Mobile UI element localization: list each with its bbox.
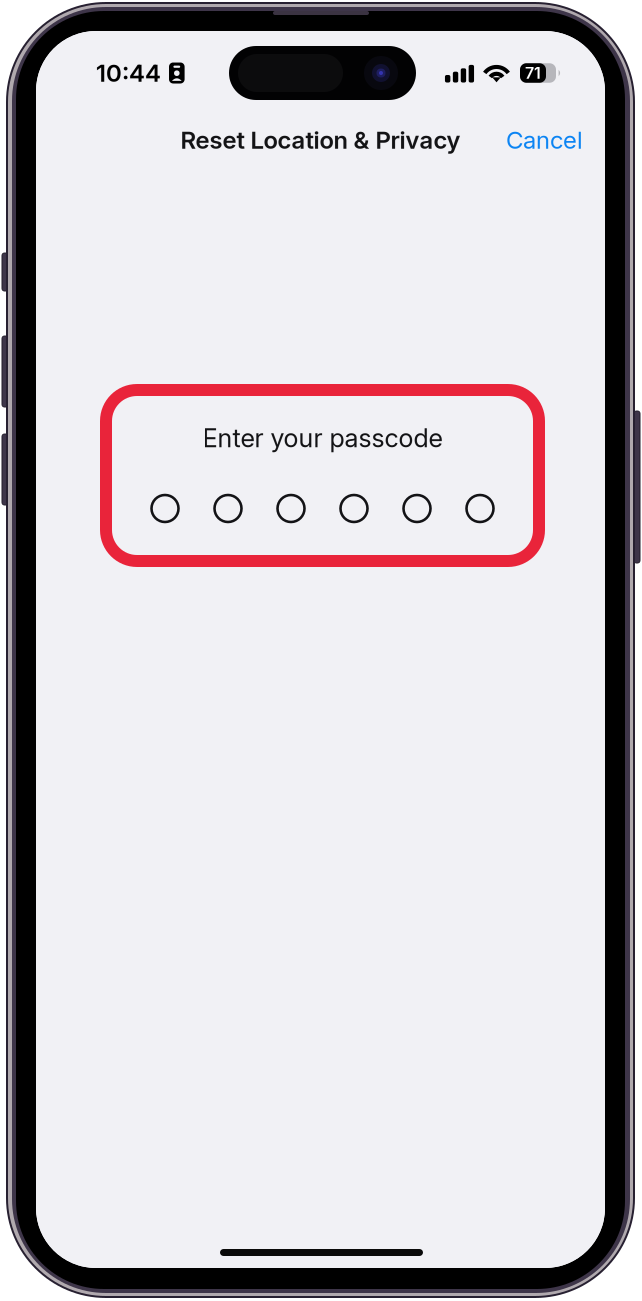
staticText: Enter your passcode <box>202 423 442 453</box>
button[interactable]: Cancel <box>490 125 605 155</box>
staticText: Cancel <box>506 125 583 154</box>
staticText: 10:44 <box>96 58 161 87</box>
button[interactable]: Enter your passcode <box>100 384 545 567</box>
staticText: Reset Location & Privacy <box>180 125 460 154</box>
staticText: 71 <box>525 63 541 83</box>
